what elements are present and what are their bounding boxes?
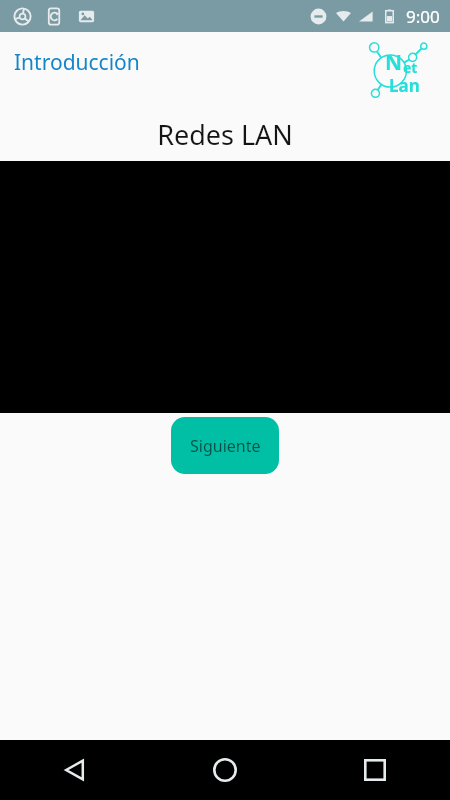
button[interactable]: Recent apps [300, 740, 450, 800]
staticText: 9:00 [406, 5, 440, 28]
button[interactable]: Back [0, 740, 150, 800]
staticText: Redes LAN [157, 116, 293, 153]
button[interactable]: Home [150, 740, 300, 800]
staticText: Lan [389, 74, 420, 97]
staticText: Introducción [14, 48, 140, 77]
button[interactable]: NetLan logo [368, 40, 430, 102]
staticText: Siguiente [190, 435, 261, 457]
staticText: N [385, 48, 403, 77]
button[interactable]: Introducción [12, 46, 142, 79]
button[interactable]: Siguiente [171, 417, 279, 474]
staticText: et [403, 58, 418, 77]
